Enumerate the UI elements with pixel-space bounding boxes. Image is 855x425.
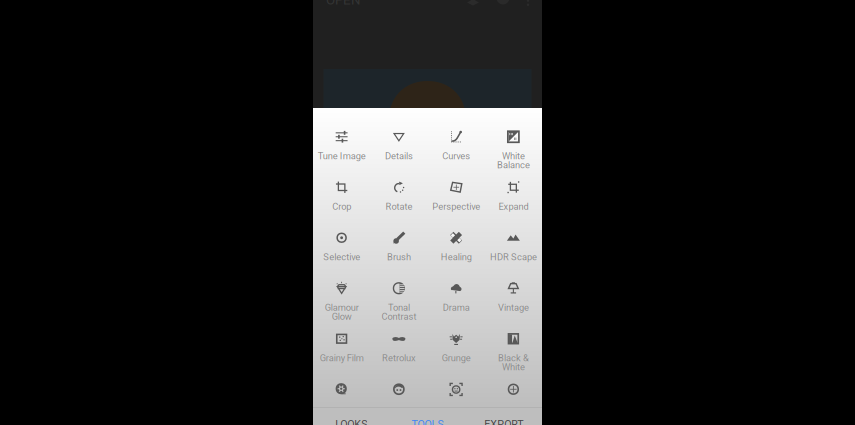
staticText: Rotate <box>385 201 412 212</box>
staticText: Vintage <box>498 302 529 313</box>
staticText: LOOKS <box>335 418 367 425</box>
staticText: White <box>502 150 525 161</box>
button[interactable]: Rotate <box>370 156 427 207</box>
button[interactable]: Grainy Film <box>313 308 370 358</box>
button[interactable] <box>427 358 485 409</box>
button[interactable]: Glamour <box>313 257 370 308</box>
staticText: Grunge <box>442 352 471 363</box>
button[interactable]: Crop <box>313 156 370 207</box>
staticText: Grainy Film <box>320 352 364 363</box>
staticText: Retrolux <box>382 352 416 363</box>
staticText: HDR Scape <box>490 251 537 262</box>
staticText: Healing <box>441 251 472 262</box>
staticText: Details <box>385 150 413 161</box>
staticText: Perspective <box>432 201 480 212</box>
button[interactable]: White <box>485 106 542 156</box>
button[interactable]: Selective <box>313 207 370 257</box>
staticText: Black & <box>498 352 529 363</box>
button[interactable]: TOOLS <box>389 408 466 425</box>
staticText: Brush <box>387 251 411 262</box>
button[interactable]: Healing <box>427 207 485 257</box>
button[interactable]: Vintage <box>485 257 542 308</box>
button[interactable]: HDR Scape <box>485 207 542 257</box>
staticText: EXPORT <box>484 418 523 425</box>
staticText: Drama <box>443 302 470 313</box>
button[interactable]: Drama <box>427 257 485 308</box>
staticText: Glamour <box>325 302 359 313</box>
button[interactable]: Expand <box>485 156 542 207</box>
button[interactable]: Curves <box>427 106 485 156</box>
button[interactable] <box>485 358 542 409</box>
button[interactable]: Brush <box>370 207 427 257</box>
staticText: Glow <box>332 311 352 322</box>
staticText: White <box>502 361 525 372</box>
staticText: Crop <box>332 201 351 212</box>
button[interactable]: Tonal <box>370 257 427 308</box>
button[interactable]: EXPORT <box>466 408 542 425</box>
button[interactable]: Grunge <box>427 308 485 358</box>
button[interactable]: More options <box>523 0 533 5</box>
button[interactable]: Tune Image <box>313 106 370 156</box>
button[interactable] <box>313 358 370 409</box>
staticText: Balance <box>497 159 530 170</box>
button[interactable]: OPEN <box>313 0 366 5</box>
button[interactable] <box>370 358 427 409</box>
button[interactable]: Black & <box>485 308 542 358</box>
staticText: OPEN <box>326 0 361 8</box>
button[interactable]: Details <box>370 106 427 156</box>
staticText: Tonal <box>388 302 410 313</box>
staticText: TOOLS <box>411 418 443 425</box>
button[interactable]: Retrolux <box>370 308 427 358</box>
staticText: Selective <box>323 251 360 262</box>
staticText: Tune Image <box>318 150 366 161</box>
staticText: Contrast <box>381 311 416 322</box>
button[interactable]: LOOKS <box>313 408 389 425</box>
button[interactable]: Info <box>496 0 510 5</box>
button[interactable]: Perspective <box>427 156 485 207</box>
button[interactable]: Stacks <box>466 0 480 5</box>
staticText: Expand <box>498 201 528 212</box>
staticText: Curves <box>442 150 470 161</box>
